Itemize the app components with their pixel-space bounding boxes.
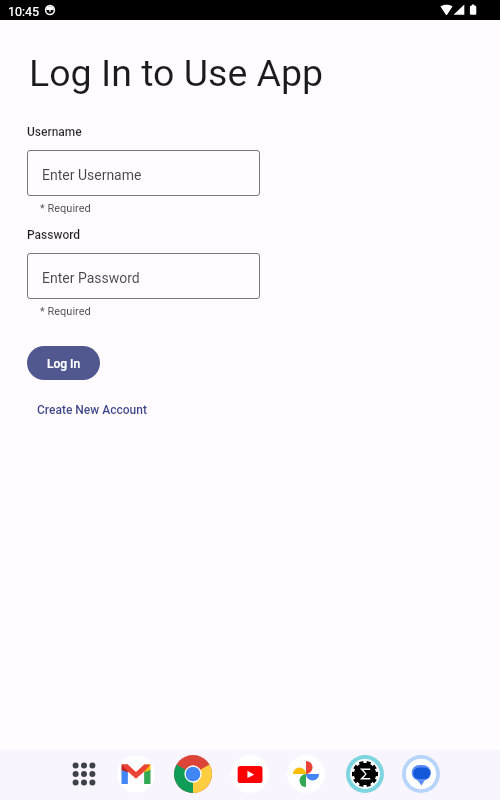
button[interactable]: YouTube	[225, 749, 275, 799]
staticText: Password	[27, 228, 81, 242]
staticText: Enter Username	[42, 167, 142, 183]
staticText: * Required	[40, 305, 91, 318]
staticText: Log In	[47, 357, 81, 371]
staticText: Log In to Use App	[29, 51, 324, 95]
button[interactable]: Enter Password	[27, 253, 260, 299]
staticText: Username	[27, 125, 82, 139]
button[interactable]: Create New Account	[37, 403, 147, 417]
button[interactable]: Photos	[281, 749, 331, 799]
staticText: * Required	[40, 202, 91, 215]
button[interactable]: Enter Username	[27, 150, 260, 196]
button[interactable]: Chrome	[168, 749, 218, 799]
staticText: Create New Account	[37, 403, 147, 417]
staticText: 10:45	[8, 4, 40, 19]
staticText: Enter Password	[42, 270, 140, 286]
button[interactable]: All apps	[59, 749, 109, 799]
button[interactable]: Log In	[27, 346, 100, 380]
button[interactable]: Messages	[396, 749, 446, 799]
button[interactable]: Gmail	[111, 749, 161, 799]
button[interactable]: Settings	[340, 749, 390, 799]
